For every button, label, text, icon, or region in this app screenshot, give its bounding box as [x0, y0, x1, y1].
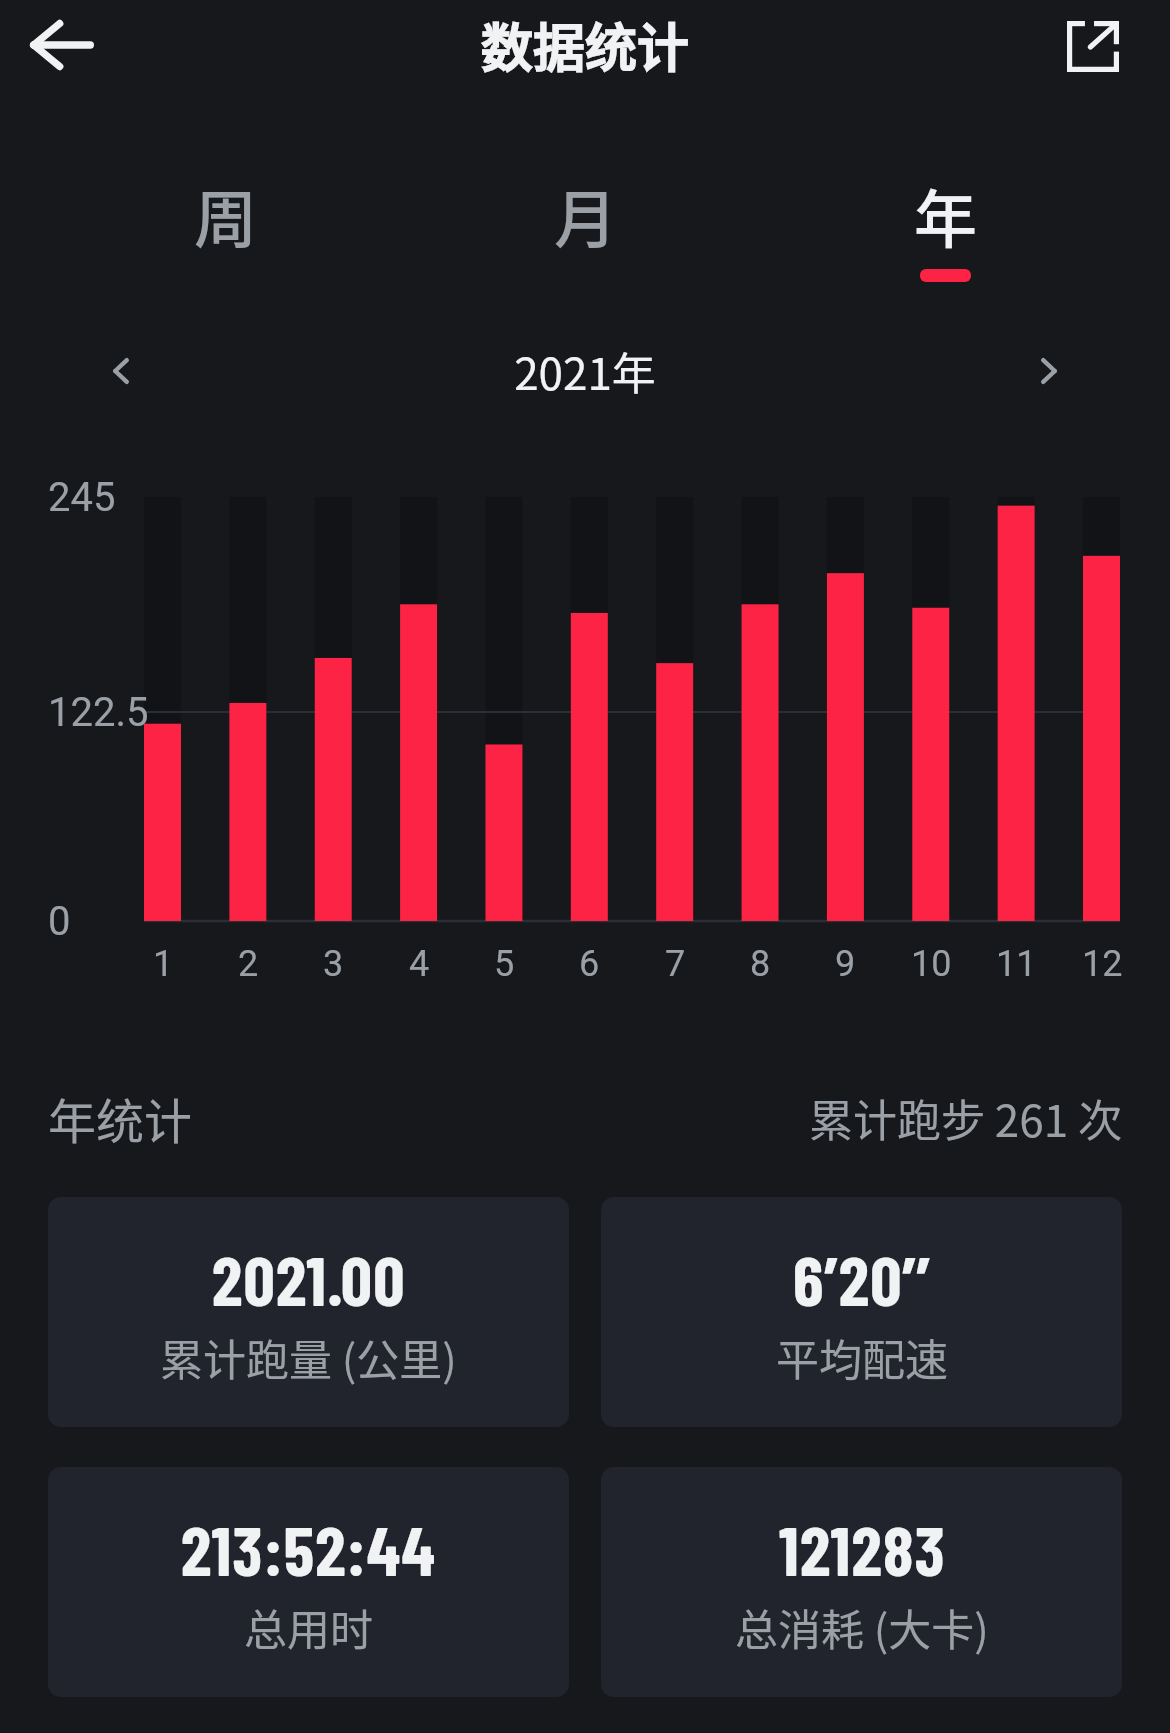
staticText: 10	[911, 943, 952, 985]
button[interactable]: Previous year	[81, 331, 161, 411]
staticText: 3	[323, 943, 344, 985]
button[interactable]: 213:52:44	[48, 1467, 569, 1697]
button[interactable]: Next year	[1009, 331, 1089, 411]
staticText: 9	[835, 943, 856, 985]
staticText: 121283	[779, 1507, 946, 1590]
staticText: 累计跑步 261 次	[809, 1086, 1122, 1150]
button[interactable]: 121283	[601, 1467, 1122, 1697]
button[interactable]: Back	[14, 0, 110, 90]
staticText: 2021年	[161, 339, 1009, 403]
staticText: 周	[194, 169, 257, 260]
staticText: 6’20’’	[793, 1237, 931, 1320]
staticText: 1	[153, 943, 174, 985]
staticText: 213:52:44	[181, 1507, 436, 1590]
staticText: 8	[750, 943, 771, 985]
button[interactable]: 周	[45, 169, 405, 285]
staticText: 月	[554, 169, 617, 260]
staticText: 0	[48, 898, 71, 945]
staticText: 累计跑量 (公里)	[160, 1326, 457, 1388]
button[interactable]: 年	[765, 169, 1125, 285]
staticText: 245	[48, 474, 116, 521]
staticText: 4	[409, 943, 430, 985]
staticText: 年统计	[48, 1083, 193, 1153]
staticText: 2021.00	[212, 1237, 406, 1320]
staticText: 122.5	[48, 689, 149, 736]
staticText: 6	[579, 943, 600, 985]
staticText: 7	[665, 943, 686, 985]
button[interactable]: 2021.00	[48, 1197, 569, 1427]
staticText: 11	[996, 943, 1037, 985]
staticText: 5	[494, 943, 515, 985]
staticText: 总用时	[244, 1596, 373, 1658]
button[interactable]: Share	[1045, 1, 1141, 91]
staticText: 平均配速	[776, 1326, 948, 1388]
button[interactable]: 月	[405, 169, 765, 285]
staticText: 总消耗 (大卡)	[735, 1596, 989, 1658]
button[interactable]: 6’20’’	[601, 1197, 1122, 1427]
staticText: 2	[238, 943, 259, 985]
staticText: 12	[1082, 943, 1123, 985]
staticText: 数据统计	[481, 7, 690, 82]
staticText: 年	[914, 169, 977, 260]
